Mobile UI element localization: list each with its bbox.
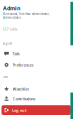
button[interactable]: Watchlist xyxy=(0,84,70,94)
staticText: Bureaucrat, Interface administrator, Adm… xyxy=(3,12,50,19)
staticText: Contributions xyxy=(13,96,36,101)
staticText: 557 edits xyxy=(3,28,17,31)
staticText: Admin xyxy=(3,5,20,12)
staticText: Watchlist xyxy=(13,86,29,91)
staticText: English xyxy=(3,42,13,45)
button[interactable]: Log out xyxy=(1,105,71,115)
button[interactable]: Preferences xyxy=(0,59,70,70)
staticText: Talk xyxy=(13,51,20,56)
button[interactable]: Talk xyxy=(0,48,70,59)
staticText: Preferences xyxy=(13,62,34,67)
staticText: Log out xyxy=(12,107,27,113)
button[interactable]: Contributions xyxy=(0,94,70,104)
staticText: Data xyxy=(3,75,8,78)
